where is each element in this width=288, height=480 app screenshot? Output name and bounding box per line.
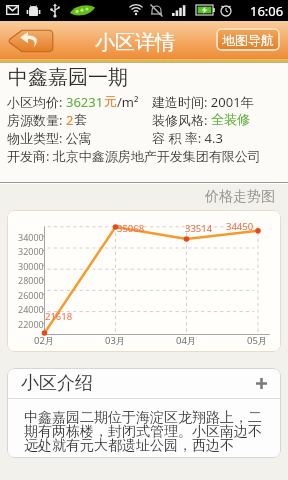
staticText: 小区均价: bbox=[7, 93, 66, 111]
staticText: 33514 bbox=[185, 222, 213, 235]
staticText: 开发商: 北京中鑫源房地产开发集团有限公司 bbox=[7, 147, 261, 165]
staticText: 16:06 bbox=[250, 2, 284, 20]
staticText: 28000 bbox=[18, 274, 44, 286]
staticText: 34000 bbox=[18, 231, 44, 243]
staticText: 05月 bbox=[247, 334, 268, 347]
staticText: 32000 bbox=[18, 245, 44, 257]
staticText: 小区介绍 bbox=[21, 372, 93, 395]
staticText: 02月 bbox=[34, 334, 55, 347]
staticText: 房源数量: bbox=[7, 111, 66, 129]
button[interactable]: 小区介绍 bbox=[7, 368, 281, 398]
staticText: 35068 bbox=[117, 222, 145, 235]
staticText: 中鑫嘉园一期 bbox=[8, 65, 128, 90]
button[interactable]: 返回 bbox=[8, 29, 54, 53]
staticText: 价格走势图 bbox=[205, 188, 275, 206]
staticText: 建造时间: 2001年 bbox=[152, 93, 254, 111]
staticText: 22000 bbox=[18, 318, 44, 330]
staticText: 30000 bbox=[18, 260, 44, 272]
staticText: 36231 bbox=[66, 93, 104, 111]
staticText: 04月 bbox=[176, 334, 197, 347]
staticText: 24000 bbox=[18, 303, 44, 315]
staticText: 元 bbox=[104, 93, 117, 109]
staticText: 21618 bbox=[45, 310, 73, 323]
staticText: 中鑫嘉园二期位于海淀区龙翔路上，二期有两栋楼，封闭式管理。小区南边不远处就有元大… bbox=[24, 409, 271, 455]
staticText: /m² bbox=[117, 93, 139, 111]
staticText: 2 bbox=[66, 111, 74, 129]
staticText: 26000 bbox=[18, 289, 44, 301]
staticText: 装修风格: bbox=[152, 111, 211, 129]
button[interactable]: 地图导航 bbox=[216, 28, 280, 51]
staticText: 34450 bbox=[226, 220, 254, 233]
staticText: 03月 bbox=[105, 334, 126, 347]
staticText: 套 bbox=[74, 111, 87, 127]
staticText: 小区详情 bbox=[95, 30, 175, 55]
staticText: 地图导航 bbox=[222, 32, 274, 48]
staticText: 物业类型: 公寓 bbox=[7, 129, 92, 147]
staticText: 全装修 bbox=[211, 111, 250, 127]
staticText: 容 积 率: 4.3 bbox=[152, 129, 223, 147]
